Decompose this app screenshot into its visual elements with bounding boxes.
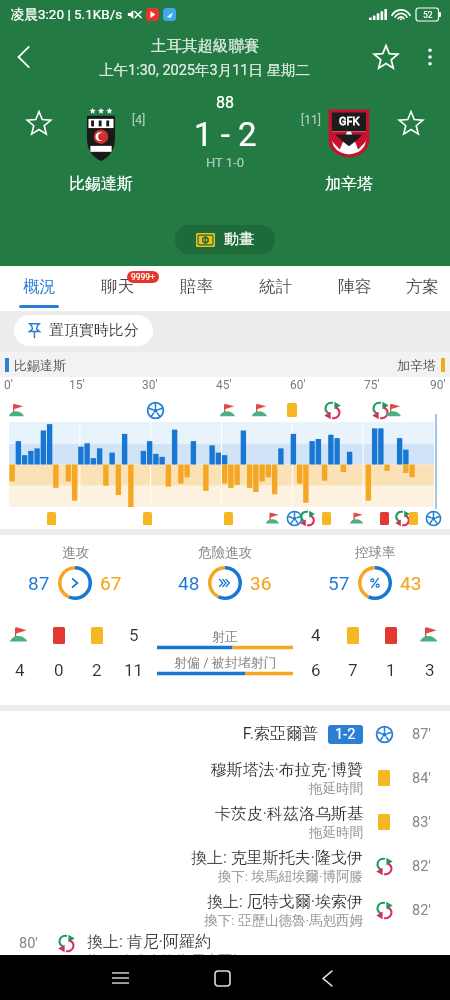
staticText: 0': [4, 378, 13, 392]
button[interactable]: Add to favourites: [362, 29, 410, 85]
staticText: 拖延時間: [309, 824, 363, 841]
staticText: 換上: 厄特戈爾·埃索伊: [206, 892, 363, 912]
button[interactable]: 統計: [236, 266, 315, 311]
staticText: 1: [386, 660, 396, 680]
staticText: 6: [311, 660, 321, 680]
staticText: 4: [15, 660, 25, 680]
button[interactable]: 卡茨皮·科茲洛乌斯基: [0, 800, 450, 844]
staticText: 凌晨3:20 | 5.1KB/s: [11, 6, 123, 23]
staticText: 聊天: [101, 276, 134, 297]
staticText: 60': [290, 378, 306, 392]
button[interactable]: 陣容: [315, 266, 394, 311]
staticText: HT 1-0: [206, 155, 245, 170]
staticText: 4: [311, 625, 321, 645]
staticText: 30': [142, 378, 158, 392]
staticText: 動畫: [224, 230, 254, 249]
staticText: 置頂實時比分: [49, 321, 139, 340]
staticText: 2: [92, 660, 102, 680]
button[interactable]: Recent apps: [98, 956, 142, 1000]
button[interactable]: F.索亞爾普: [0, 712, 450, 756]
staticText: 88: [216, 93, 234, 112]
staticText: 換下: 金盧由德薩·馬克西姆: [87, 952, 246, 955]
staticText: 換下: 埃馬紐埃爾·博阿滕: [217, 868, 363, 885]
button[interactable]: Back: [305, 956, 349, 1000]
button[interactable]: 聊天: [78, 266, 157, 311]
staticText: 加辛塔: [325, 174, 373, 194]
staticText: F.索亞爾普: [242, 724, 318, 744]
staticText: 90': [430, 378, 446, 392]
staticText: 比錫達斯: [14, 357, 66, 373]
staticText: 36: [250, 572, 272, 594]
button[interactable]: 賠率: [157, 266, 236, 311]
button[interactable]: Back: [0, 29, 48, 85]
staticText: 1 - 2: [194, 115, 257, 154]
staticText: 9999+: [131, 272, 155, 282]
staticText: 3: [425, 660, 435, 680]
staticText: 80': [19, 935, 38, 952]
staticText: 穆斯塔法·布拉克·博贊: [210, 760, 363, 780]
staticText: 1-2: [335, 726, 356, 743]
staticText: 82': [412, 858, 431, 875]
staticText: 87: [28, 572, 50, 594]
staticText: 統計: [259, 276, 292, 297]
button[interactable]: Favourite home team: [0, 85, 78, 200]
button[interactable]: Home: [200, 956, 244, 1000]
button[interactable]: 穆斯塔法·布拉克·博贊: [0, 756, 450, 800]
button[interactable]: 置頂實時比分: [14, 315, 153, 346]
button[interactable]: Favourite away team: [372, 85, 450, 200]
staticText: 52: [423, 10, 433, 20]
staticText: 換下: 亞歷山德魯·馬剋西姆: [204, 912, 363, 929]
staticText: 83': [412, 814, 431, 831]
staticText: 進攻: [62, 544, 89, 561]
staticText: 11: [124, 660, 144, 680]
staticText: 7: [348, 660, 358, 680]
staticText: 概況: [23, 276, 56, 297]
staticText: 方案: [406, 276, 439, 297]
staticText: 射正: [212, 628, 238, 644]
button[interactable]: 概況: [0, 266, 78, 311]
staticText: 上午1:30, 2025年3月11日 星期二: [99, 61, 311, 79]
button[interactable]: 動畫: [175, 225, 275, 254]
staticText: 賠率: [180, 276, 213, 297]
staticText: 控球率: [355, 544, 396, 561]
staticText: 82': [412, 902, 431, 919]
button[interactable]: 換上: 厄特戈爾·埃索伊: [0, 888, 450, 932]
staticText: 67: [100, 572, 122, 594]
staticText: 15': [69, 378, 85, 392]
staticText: 陣容: [338, 276, 371, 297]
staticText: 卡茨皮·科茲洛乌斯基: [214, 804, 363, 824]
button[interactable]: 換上: 克里斯托夫·隆戈伊: [0, 844, 450, 888]
staticText: 土耳其超級聯賽: [151, 36, 260, 56]
staticText: 換上: 肯尼·阿羅約: [87, 932, 212, 952]
staticText: GFK: [339, 115, 360, 128]
staticText: 危險進攻: [198, 544, 252, 561]
staticText: 射偏 / 被封堵射门: [174, 654, 277, 670]
staticText: [11]: [301, 113, 321, 127]
staticText: [4]: [132, 113, 146, 127]
staticText: 比錫達斯: [69, 174, 133, 194]
staticText: 45': [216, 378, 232, 392]
button[interactable]: More options: [410, 29, 450, 85]
staticText: 換上: 克里斯托夫·隆戈伊: [190, 848, 363, 868]
staticText: 87': [412, 726, 431, 743]
staticText: 48: [178, 572, 200, 594]
button[interactable]: 80': [0, 932, 450, 955]
staticText: 75': [364, 378, 380, 392]
staticText: 5: [129, 625, 139, 645]
staticText: 57: [328, 572, 350, 594]
staticText: 拖延時間: [309, 780, 363, 797]
staticText: 0: [54, 660, 64, 680]
staticText: 加辛塔: [397, 357, 436, 373]
staticText: 84': [412, 770, 431, 787]
staticText: 43: [400, 572, 422, 594]
button[interactable]: 方案: [394, 266, 450, 311]
